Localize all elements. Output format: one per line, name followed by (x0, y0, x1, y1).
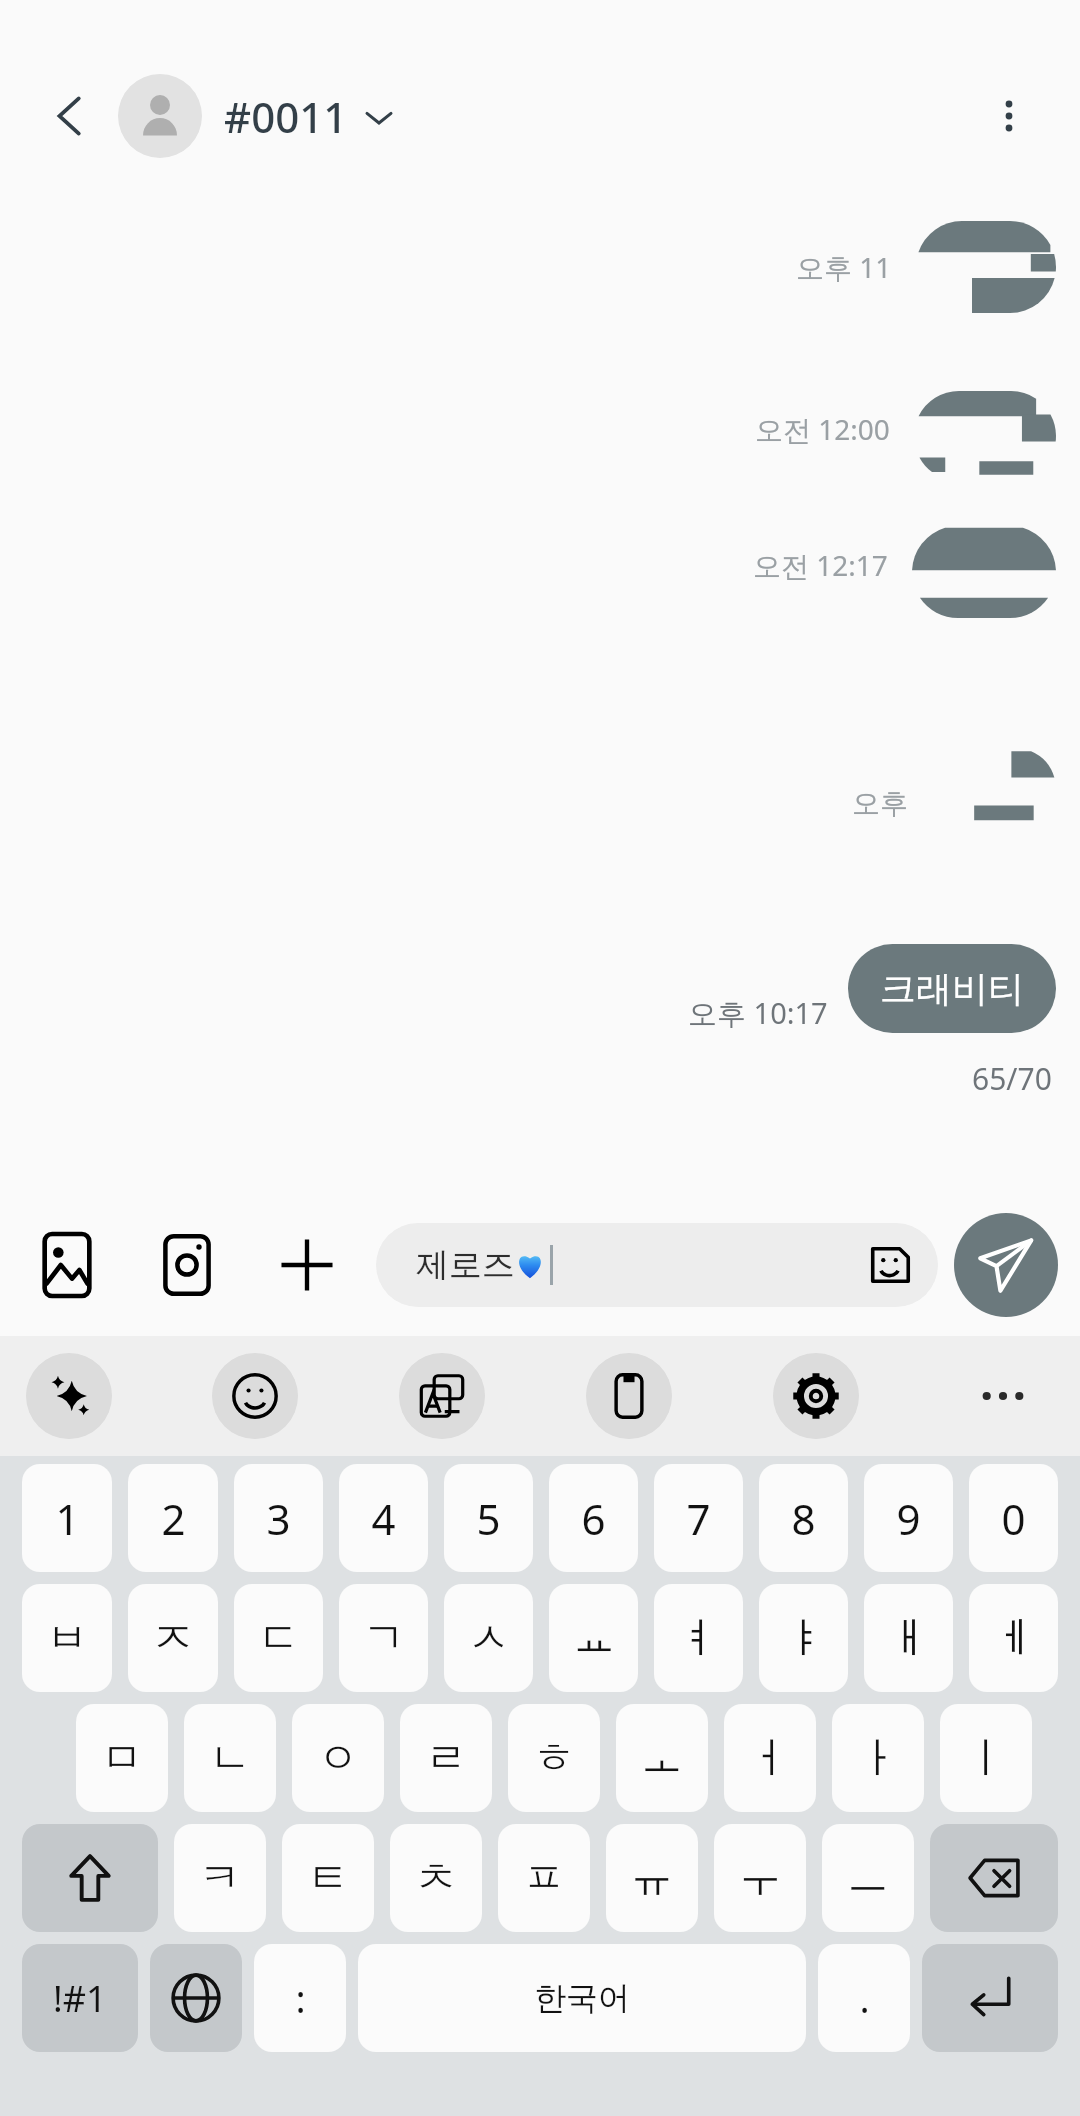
staticText: ㅓ (749, 1732, 791, 1785)
staticText: 65/70 (972, 1058, 1052, 1099)
button[interactable]: ㅎ (508, 1704, 600, 1812)
staticText: ㅐ (888, 1612, 930, 1665)
staticText: ㅜ (739, 1852, 781, 1905)
staticText: ㅏ (857, 1732, 899, 1785)
button[interactable]: 2 (128, 1464, 218, 1572)
button[interactable]: ㅁ (76, 1704, 168, 1812)
button[interactable]: #0011 (224, 88, 394, 145)
button[interactable]: More options (968, 75, 1050, 157)
button[interactable]: ㅛ (549, 1584, 638, 1692)
staticText: ㅅ (468, 1612, 510, 1665)
button[interactable]: Backspace (930, 1824, 1058, 1932)
button[interactable]: Add attachment (264, 1222, 350, 1308)
staticText: 9 (896, 1490, 921, 1547)
button[interactable]: Keyboard settings (773, 1353, 859, 1439)
button[interactable]: : (254, 1944, 346, 2052)
staticText: 오후 11 (796, 248, 892, 286)
button[interactable]: ㄴ (184, 1704, 276, 1812)
staticText: ㅕ (678, 1612, 720, 1665)
button[interactable]: 제로즈 (376, 1223, 938, 1307)
button[interactable]: 크래비티 (848, 944, 1056, 1033)
button[interactable]: ㄹ (400, 1704, 492, 1812)
button[interactable]: Translate (399, 1353, 485, 1439)
staticText: ㄴ (209, 1732, 251, 1785)
button[interactable]: More keyboard options (960, 1353, 1046, 1439)
staticText: 4 (371, 1490, 396, 1547)
button[interactable]: ㅇ (292, 1704, 384, 1812)
button[interactable]: !#1 (22, 1944, 138, 2052)
staticText: ㄱ (363, 1612, 405, 1665)
button[interactable]: ㅏ (832, 1704, 924, 1812)
button[interactable]: 3 (234, 1464, 323, 1572)
button[interactable]: AI suggestions (26, 1353, 112, 1439)
button[interactable]: 8 (759, 1464, 848, 1572)
button[interactable]: ㅣ (940, 1704, 1032, 1812)
button[interactable]: 6 (549, 1464, 638, 1572)
button[interactable]: Back (34, 80, 106, 152)
button[interactable]: 7 (654, 1464, 743, 1572)
staticText: 제로즈 (416, 1244, 515, 1286)
button[interactable]: ㅔ (969, 1584, 1058, 1692)
button[interactable]: Gallery (24, 1222, 110, 1308)
button[interactable]: ㅊ (390, 1824, 482, 1932)
staticText: ㅎ (533, 1732, 575, 1785)
button[interactable]: 5 (444, 1464, 533, 1572)
staticText: 오전 12:17 (753, 546, 888, 584)
staticText: ㅡ (847, 1852, 889, 1905)
button[interactable]: ㅑ (759, 1584, 848, 1692)
staticText: ㅍ (523, 1852, 565, 1905)
button[interactable]: Stickers (862, 1237, 918, 1293)
staticText: 5 (476, 1490, 501, 1547)
staticText: !#1 (53, 1974, 107, 2023)
button[interactable]: ㅡ (822, 1824, 914, 1932)
staticText: ㅈ (152, 1612, 194, 1665)
button[interactable]: Change language (150, 1944, 242, 2052)
staticText: ㅇ (317, 1732, 359, 1785)
button[interactable]: ㅍ (498, 1824, 590, 1932)
button[interactable]: Clipboard (586, 1353, 672, 1439)
staticText: ㅑ (783, 1612, 825, 1665)
button[interactable]: ㅐ (864, 1584, 953, 1692)
staticText: ㅛ (573, 1612, 615, 1665)
staticText: ㅋ (199, 1852, 241, 1905)
button[interactable]: Camera (144, 1222, 230, 1308)
staticText: 1 (55, 1490, 80, 1547)
button[interactable]: ㅜ (714, 1824, 806, 1932)
staticText: ㅗ (641, 1732, 683, 1785)
button[interactable]: Shift (22, 1824, 158, 1932)
button[interactable]: ㅈ (128, 1584, 218, 1692)
button[interactable]: ㅂ (22, 1584, 112, 1692)
staticText: 오전 12:00 (755, 410, 890, 448)
staticText: 8 (791, 1490, 816, 1547)
button[interactable]: . (818, 1944, 910, 2052)
button[interactable]: ㅌ (282, 1824, 374, 1932)
staticText: ㅂ (46, 1612, 88, 1665)
button[interactable]: ㅠ (606, 1824, 698, 1932)
staticText: ㄷ (258, 1612, 300, 1665)
button[interactable]: Send (954, 1213, 1058, 1317)
button[interactable]: ㅋ (174, 1824, 266, 1932)
staticText: 6 (581, 1490, 606, 1547)
button[interactable]: ㅓ (724, 1704, 816, 1812)
staticText: 0 (1001, 1490, 1026, 1547)
staticText: 한국어 (534, 1978, 630, 2018)
staticText: 3 (266, 1490, 291, 1547)
button[interactable]: 9 (864, 1464, 953, 1572)
button[interactable]: ㅕ (654, 1584, 743, 1692)
button[interactable]: 한국어 (358, 1944, 806, 2052)
button[interactable]: 1 (22, 1464, 112, 1572)
staticText: . (859, 1972, 870, 2024)
staticText: ㅌ (307, 1852, 349, 1905)
button[interactable]: Emoji (212, 1353, 298, 1439)
button[interactable]: ㅗ (616, 1704, 708, 1812)
button[interactable]: ㄷ (234, 1584, 323, 1692)
staticText: ㅠ (631, 1852, 673, 1905)
staticText: : (295, 1972, 306, 2024)
staticText: 크래비티 (880, 966, 1024, 1011)
button[interactable]: Enter (922, 1944, 1058, 2052)
button[interactable]: Contact photo (118, 74, 202, 158)
button[interactable]: ㅅ (444, 1584, 533, 1692)
button[interactable]: ㄱ (339, 1584, 428, 1692)
button[interactable]: 4 (339, 1464, 428, 1572)
button[interactable]: 0 (969, 1464, 1058, 1572)
